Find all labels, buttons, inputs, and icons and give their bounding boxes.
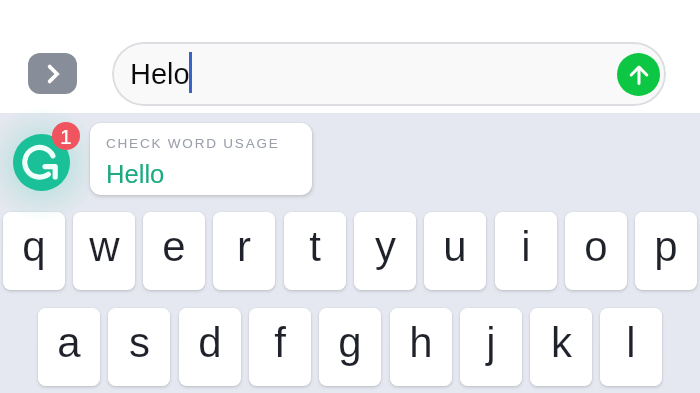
button[interactable]: Send bbox=[617, 53, 660, 96]
button[interactable]: l bbox=[600, 308, 662, 386]
staticText: e bbox=[162, 223, 186, 270]
button[interactable]: g bbox=[319, 308, 381, 386]
button[interactable]: t bbox=[284, 212, 346, 290]
staticText: k bbox=[551, 319, 572, 366]
staticText: Helo bbox=[130, 58, 190, 90]
button[interactable]: r bbox=[213, 212, 275, 290]
button[interactable]: s bbox=[108, 308, 170, 386]
button[interactable]: Expand toolbar bbox=[28, 53, 77, 94]
button[interactable]: a bbox=[38, 308, 100, 386]
staticText: p bbox=[654, 223, 678, 270]
button[interactable]: CHECK WORD USAGE bbox=[90, 123, 312, 195]
staticText: d bbox=[198, 319, 222, 366]
button[interactable]: h bbox=[390, 308, 452, 386]
button[interactable]: w bbox=[73, 212, 135, 290]
button[interactable]: u bbox=[424, 212, 486, 290]
staticText: w bbox=[89, 223, 120, 270]
button[interactable]: q bbox=[3, 212, 65, 290]
button[interactable]: e bbox=[143, 212, 205, 290]
staticText: a bbox=[57, 319, 81, 366]
staticText: u bbox=[443, 223, 467, 270]
staticText: 1 bbox=[60, 125, 72, 148]
button[interactable]: f bbox=[249, 308, 311, 386]
button[interactable]: y bbox=[354, 212, 416, 290]
staticText: f bbox=[274, 319, 286, 366]
button[interactable]: Grammarly bbox=[13, 134, 70, 191]
staticText: g bbox=[338, 319, 362, 366]
staticText: s bbox=[129, 319, 150, 366]
staticText: o bbox=[584, 223, 608, 270]
button[interactable]: k bbox=[530, 308, 592, 386]
button[interactable]: d bbox=[179, 308, 241, 386]
staticText: l bbox=[626, 319, 636, 366]
staticText: CHECK WORD USAGE bbox=[106, 136, 280, 151]
button[interactable]: i bbox=[495, 212, 557, 290]
staticText: i bbox=[521, 223, 531, 270]
staticText: Hello bbox=[106, 160, 165, 189]
button[interactable]: j bbox=[460, 308, 522, 386]
staticText: h bbox=[409, 319, 433, 366]
staticText: y bbox=[375, 223, 396, 270]
staticText: j bbox=[486, 319, 496, 366]
staticText: t bbox=[309, 223, 321, 270]
staticText: q bbox=[22, 223, 46, 270]
button[interactable]: Helo bbox=[112, 42, 666, 106]
button[interactable]: o bbox=[565, 212, 627, 290]
staticText: r bbox=[237, 223, 251, 270]
button[interactable]: p bbox=[635, 212, 697, 290]
